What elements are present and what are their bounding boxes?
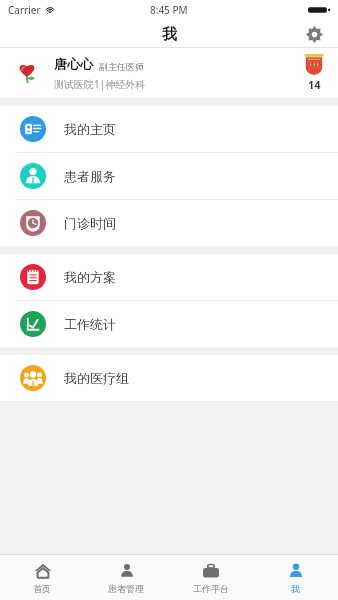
staticText: 14 [308,77,321,92]
button[interactable]: Settings [301,21,327,47]
staticText: 8:45 PM [150,3,188,17]
button[interactable]: 我的医疗组 [0,355,338,401]
button[interactable]: 工作平台 [168,555,253,600]
staticText: 工作平台 [193,583,229,594]
staticText: 我 [162,25,177,44]
staticText: 唐心心 [54,56,93,72]
staticText: 我 [291,583,300,594]
staticText: 副主任医师 [99,61,144,72]
button[interactable]: 我 [253,555,338,600]
staticText: 我的医疗组 [64,370,129,386]
staticText: 我的主页 [64,121,116,137]
staticText: 门诊时间 [64,215,116,231]
staticText: 我的方案 [64,269,116,285]
staticText: Carrier [8,3,41,17]
staticText: 测试医院1|神经外科 [54,77,146,91]
button[interactable]: 患者服务 [0,153,338,199]
button[interactable]: 我的主页 [0,106,338,152]
button[interactable]: 工作统计 [0,301,338,347]
button[interactable]: 首页 [0,555,84,600]
button[interactable]: 唐心心 [0,48,338,98]
button[interactable]: 门诊时间 [0,200,338,246]
staticText: 工作统计 [64,316,116,332]
staticText: 患者管理 [108,583,144,594]
button[interactable]: 患者管理 [84,555,168,600]
staticText: 患者服务 [64,168,116,184]
staticText: 首页 [33,583,51,594]
button[interactable]: 我的方案 [0,254,338,300]
